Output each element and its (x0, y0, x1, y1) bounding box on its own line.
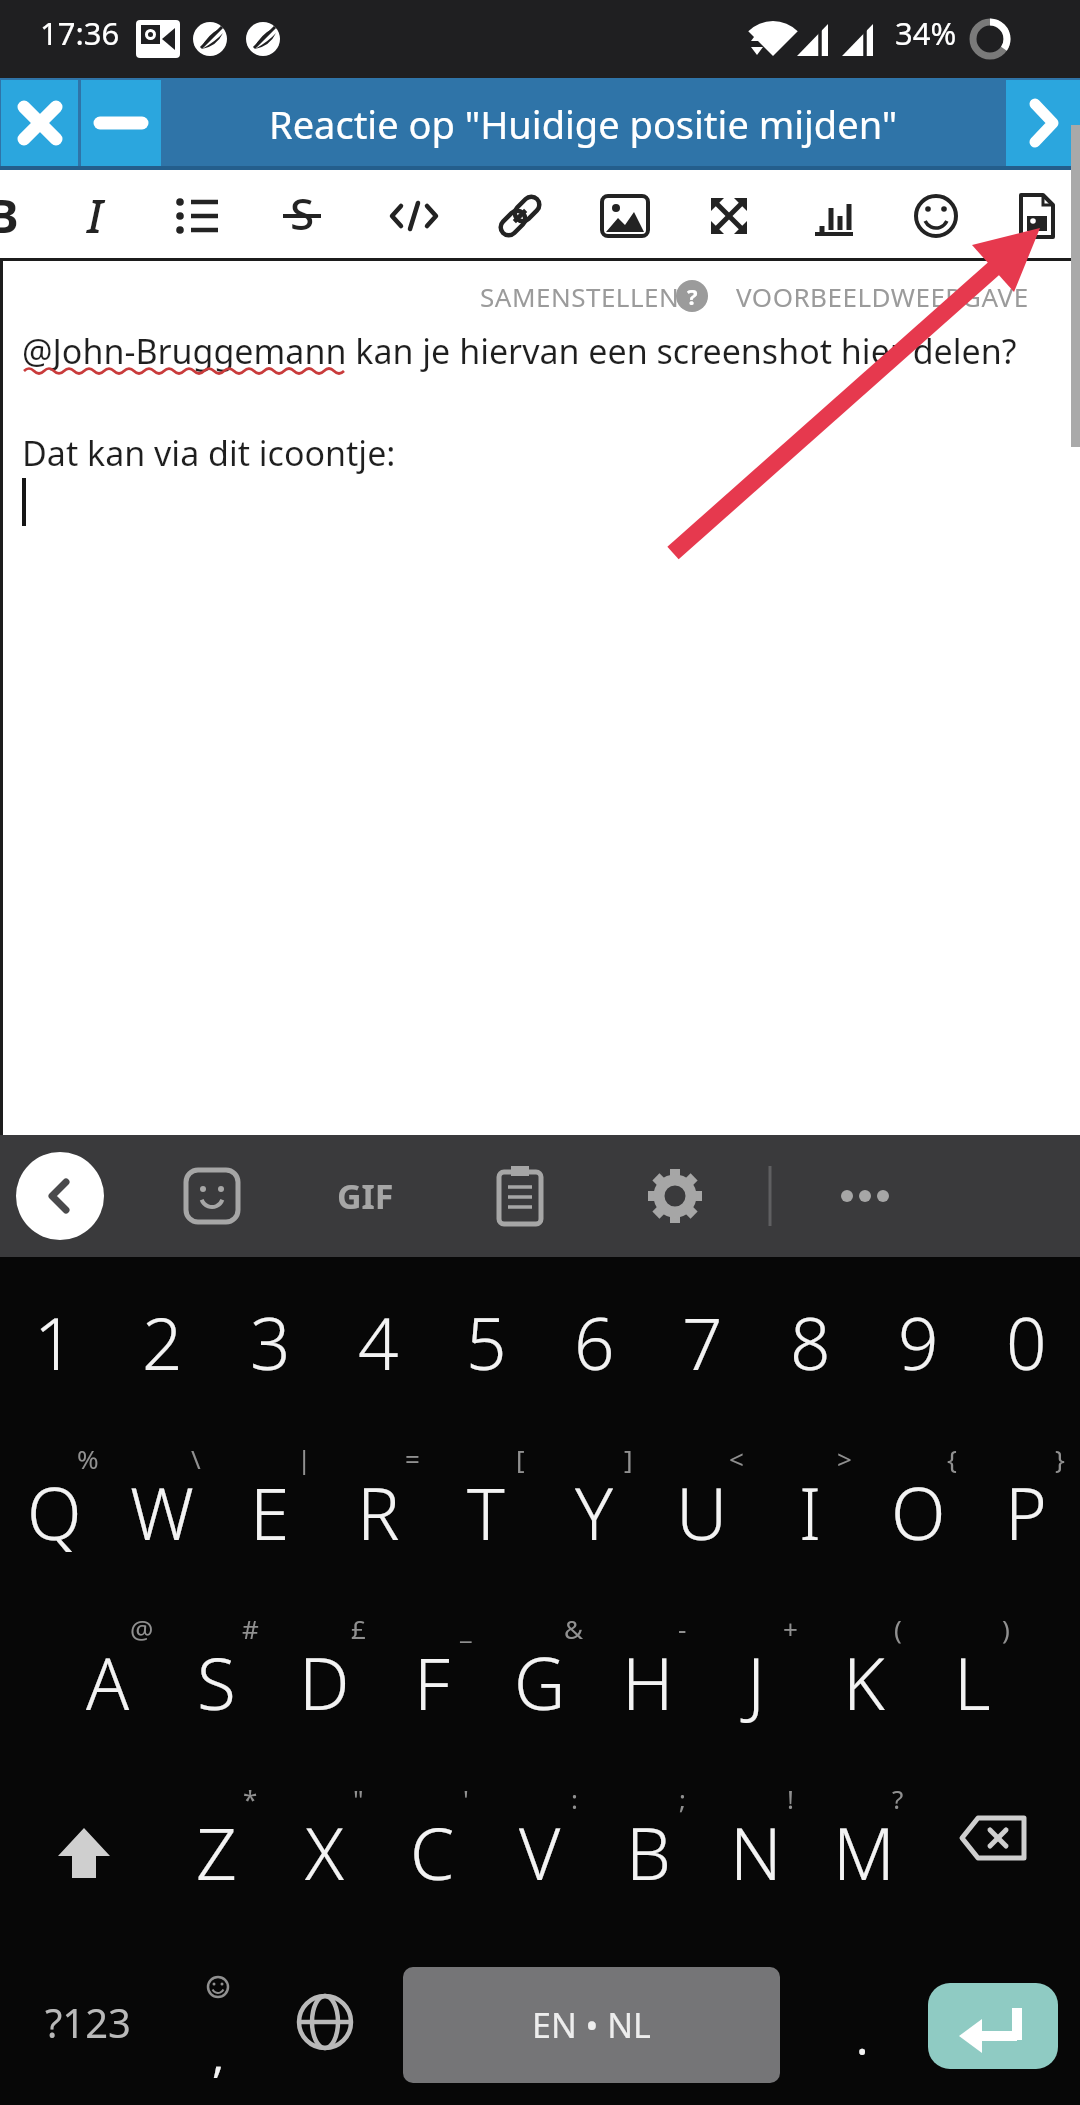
staticText: 8 (790, 1294, 831, 1391)
button[interactable]: G (486, 1597, 594, 1767)
button[interactable] (24, 1782, 144, 1922)
button[interactable]: Z (162, 1767, 270, 1937)
button[interactable] (935, 1782, 1057, 1922)
button[interactable]: SAMENSTELLEN (380, 251, 780, 341)
staticText: P (1005, 1464, 1047, 1561)
button[interactable]: T (432, 1427, 540, 1597)
button[interactable]: J (702, 1597, 810, 1767)
button[interactable]: Y (540, 1427, 648, 1597)
staticText: R (357, 1464, 400, 1561)
staticText: = (405, 1441, 420, 1476)
button[interactable]: 9 (864, 1257, 972, 1427)
staticText: & (564, 1611, 584, 1646)
staticText: E (250, 1464, 290, 1561)
button[interactable] (167, 1151, 257, 1241)
staticText: ) (1002, 1611, 1010, 1646)
button[interactable]: X (270, 1767, 378, 1937)
staticText: L (954, 1634, 991, 1731)
button[interactable]: 4 (324, 1257, 432, 1427)
button[interactable]: S (162, 1597, 270, 1767)
staticText: K (843, 1634, 885, 1731)
button[interactable] (475, 1151, 565, 1241)
staticText: 2 (142, 1294, 183, 1391)
button[interactable] (1006, 80, 1080, 166)
staticText: [ (516, 1441, 525, 1476)
staticText: ( (894, 1611, 902, 1646)
staticText: { (947, 1441, 957, 1476)
button[interactable]: B (594, 1767, 702, 1937)
button[interactable]: , (164, 1937, 272, 2105)
button[interactable]: 6 (540, 1257, 648, 1427)
button[interactable] (1, 80, 78, 166)
staticText: 34% (895, 12, 957, 54)
staticText: + (783, 1611, 798, 1646)
staticText: J (747, 1634, 765, 1731)
button[interactable] (55, 176, 135, 252)
button[interactable]: V (486, 1767, 594, 1937)
staticText: ; (679, 1781, 686, 1816)
button[interactable] (16, 1152, 104, 1240)
button[interactable]: K (810, 1597, 918, 1767)
staticText: S (290, 183, 315, 243)
button[interactable]: Q (0, 1427, 108, 1597)
staticText: Dat kan via dit icoontje: (22, 430, 396, 476)
button[interactable] (374, 176, 454, 252)
button[interactable] (820, 1151, 910, 1241)
staticText: _ (460, 1611, 472, 1646)
staticText: Q (27, 1464, 82, 1561)
button[interactable]: M (810, 1767, 918, 1937)
button[interactable] (320, 1151, 410, 1241)
button[interactable] (480, 176, 560, 252)
button[interactable]: . (822, 1992, 902, 2082)
button[interactable]: EN • NL (403, 1967, 780, 2083)
button[interactable] (585, 176, 665, 252)
button[interactable]: ?123 (8, 1977, 168, 2067)
staticText: 4 (358, 1294, 399, 1391)
button[interactable]: 0 (972, 1257, 1080, 1427)
button[interactable]: P (972, 1427, 1080, 1597)
staticText: , (212, 2023, 225, 2086)
button[interactable] (271, 1937, 379, 2105)
button[interactable]: 3 (216, 1257, 324, 1427)
button[interactable]: C (378, 1767, 486, 1937)
staticText: D (299, 1634, 350, 1731)
staticText: S (197, 1634, 236, 1731)
button[interactable]: 2 (108, 1257, 216, 1427)
button[interactable]: 5 (432, 1257, 540, 1427)
button[interactable]: A (54, 1597, 162, 1767)
staticText: } (1055, 1441, 1065, 1476)
button[interactable]: 1 (0, 1257, 108, 1427)
staticText: . (856, 2006, 869, 2069)
button[interactable]: R (324, 1427, 432, 1597)
staticText: F (414, 1634, 450, 1731)
button[interactable]: VOORBEELDWEERGAVE (662, 251, 1080, 341)
button[interactable]: 8 (756, 1257, 864, 1427)
staticText: 6 (574, 1294, 615, 1391)
button[interactable]: L (918, 1597, 1026, 1767)
button[interactable]: F (378, 1597, 486, 1767)
button[interactable] (157, 176, 237, 252)
button[interactable]: W (108, 1427, 216, 1597)
button[interactable] (689, 176, 769, 252)
button[interactable] (81, 80, 161, 166)
staticText: C (410, 1804, 455, 1901)
staticText: N (730, 1804, 782, 1901)
staticText: ?123 (45, 1995, 131, 2049)
button[interactable]: U (648, 1427, 756, 1597)
button[interactable] (794, 176, 874, 252)
button[interactable]: N (702, 1767, 810, 1937)
button[interactable] (262, 176, 342, 252)
button[interactable]: D (270, 1597, 378, 1767)
staticText: < (729, 1441, 744, 1476)
button[interactable] (630, 1151, 720, 1241)
button[interactable]: E (216, 1427, 324, 1597)
button[interactable] (997, 176, 1077, 252)
staticText: H (622, 1634, 674, 1731)
button[interactable] (928, 1983, 1058, 2069)
staticText: VOORBEELDWEERGAVE (736, 279, 1029, 314)
button[interactable]: O (864, 1427, 972, 1597)
button[interactable]: I (756, 1427, 864, 1597)
button[interactable] (896, 176, 976, 252)
button[interactable]: 7 (648, 1257, 756, 1427)
button[interactable]: H (594, 1597, 702, 1767)
